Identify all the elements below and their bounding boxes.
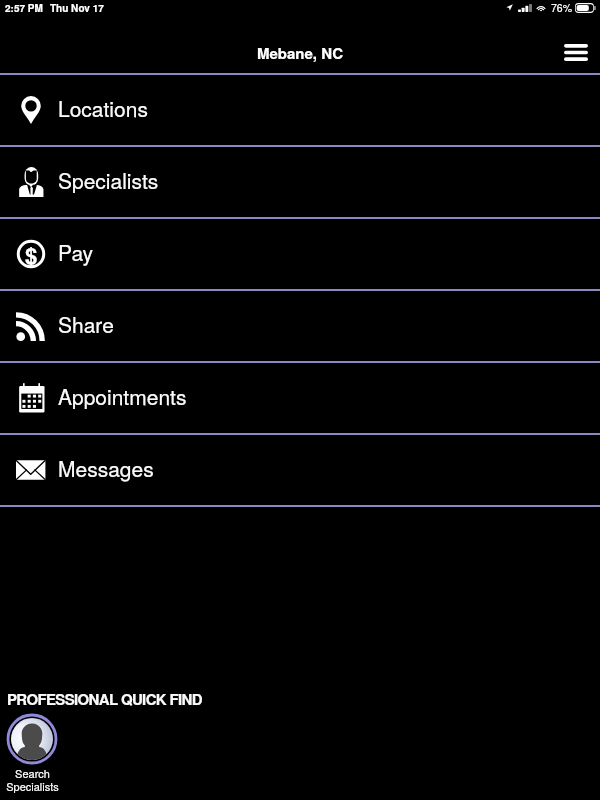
staticText: $ [25,239,38,269]
staticText: Specialists [58,165,159,195]
staticText: 2:57 PM [5,1,43,15]
staticText: PROFESSIONAL QUICK FIND [7,688,202,709]
staticText: Search Specialists [6,765,59,794]
button[interactable]: Locations [0,75,600,145]
staticText: Thu Nov 17 [50,1,104,15]
staticText: Pay [58,237,94,267]
button[interactable]: Open menu [558,34,594,70]
button[interactable]: Search Specialists [1,713,63,794]
button[interactable]: Messages [0,435,600,505]
staticText: 76% [551,0,573,15]
staticText: Locations [58,93,148,123]
staticText: Appointments [58,381,187,411]
button[interactable]: Appointments [0,363,600,433]
button[interactable]: Specialists [0,147,600,217]
staticText: Mebane, NC [257,42,343,63]
staticText: Messages [58,453,154,483]
button[interactable]: Share [0,291,600,361]
button[interactable]: $ [0,219,600,289]
staticText: Share [58,309,114,339]
